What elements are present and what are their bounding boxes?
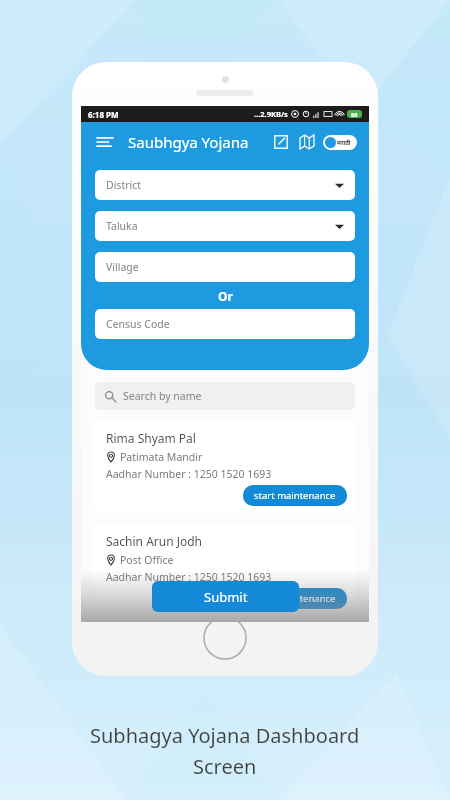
staticText: Sachin Arun Jodh	[106, 533, 203, 549]
staticText: Saubhgya Yojana	[128, 132, 249, 152]
staticText: start maintenance	[254, 592, 336, 605]
staticText: Taluka	[106, 219, 138, 233]
staticText: 80	[351, 111, 358, 118]
staticText: District	[106, 178, 142, 192]
button[interactable]: start maintenance	[243, 588, 347, 609]
staticText: Post Office	[120, 553, 174, 567]
staticText: Village	[106, 260, 139, 274]
button[interactable]: Sachin Arun Jodh	[94, 524, 356, 616]
staticText: Census Code	[106, 317, 170, 331]
button[interactable]: Submit	[152, 581, 299, 612]
staticText: Search by name	[123, 389, 202, 403]
button[interactable]: Village	[95, 252, 355, 282]
staticText: start maintenance	[254, 489, 336, 502]
staticText: Rima Shyam Pal	[106, 430, 196, 446]
staticText: Or	[218, 288, 233, 304]
staticText: Patimata Mandir	[120, 450, 203, 464]
staticText: 6:18 PM	[88, 109, 119, 120]
staticText: Screen	[193, 753, 257, 780]
button[interactable]: Map	[296, 131, 318, 153]
button[interactable]: Edit	[270, 131, 292, 153]
button[interactable]: Search by name	[95, 382, 355, 410]
button[interactable]: Taluka	[95, 211, 355, 241]
button[interactable]: Open navigation menu	[93, 130, 117, 154]
staticText: मराठी	[337, 139, 351, 147]
button[interactable]: मराठी	[323, 135, 357, 150]
button[interactable]: Rima Shyam Pal	[94, 421, 356, 513]
staticText: Subhagya Yojana Dashboard	[90, 722, 360, 749]
staticText: Submit	[204, 588, 248, 606]
staticText: Aadhar Number : 1250 1520 1693	[106, 467, 272, 481]
staticText: ...2.9KB/s	[254, 109, 288, 119]
button[interactable]: Census Code	[95, 309, 355, 339]
button[interactable]: District	[95, 170, 355, 200]
staticText: Aadhar Number : 1250 1520 1693	[106, 570, 272, 584]
button[interactable]: start maintenance	[243, 485, 347, 506]
